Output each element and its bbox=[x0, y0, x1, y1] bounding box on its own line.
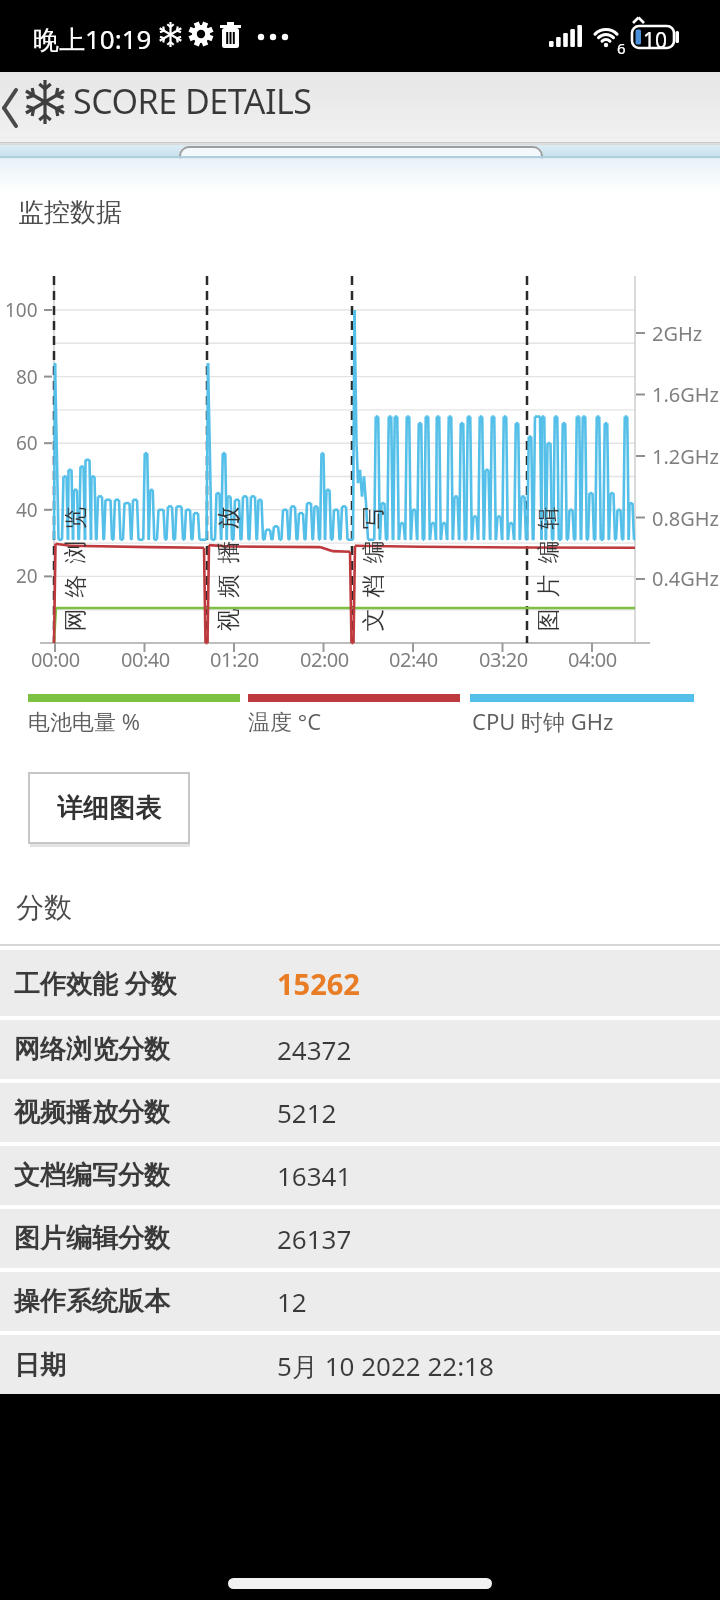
staticText: 16341 bbox=[277, 1158, 352, 1193]
staticText: 80 bbox=[16, 364, 38, 390]
staticText: 02:00 bbox=[300, 646, 349, 670]
staticText: 00:00 bbox=[31, 646, 80, 670]
staticText: 24372 bbox=[277, 1032, 352, 1067]
staticText: 网络浏览分数 bbox=[14, 1033, 170, 1066]
staticText: 04:00 bbox=[568, 646, 617, 670]
staticText: 00:40 bbox=[121, 646, 170, 670]
staticText: 5212 bbox=[277, 1095, 337, 1130]
button[interactable]: 工作效能 分数 bbox=[0, 950, 720, 1016]
staticText: 工作效能 分数 bbox=[14, 965, 177, 1001]
staticText: 分数 bbox=[16, 890, 72, 925]
staticText: 12 bbox=[277, 1284, 307, 1319]
staticText: 监控数据 bbox=[18, 196, 122, 229]
staticText: 60 bbox=[16, 430, 38, 456]
staticText: 0.8GHz bbox=[652, 505, 720, 532]
button[interactable]: 日期 bbox=[0, 1335, 720, 1396]
button[interactable]: 操作系统版本 bbox=[0, 1272, 720, 1331]
button[interactable] bbox=[0, 88, 20, 128]
staticText: 02:40 bbox=[389, 646, 438, 670]
staticText: 视频播放分数 bbox=[14, 1096, 170, 1129]
staticText: 26137 bbox=[277, 1221, 352, 1256]
staticText: 视频播放 bbox=[214, 501, 243, 637]
staticText: 0.4GHz bbox=[652, 565, 720, 592]
staticText: 操作系统版本 bbox=[14, 1285, 170, 1318]
staticText: 文档编写分数 bbox=[14, 1159, 170, 1192]
button[interactable]: 详细图表 bbox=[28, 772, 190, 844]
staticText: SCORE DETAILS bbox=[73, 78, 312, 124]
staticText: 100 bbox=[5, 297, 38, 323]
staticText: 日期 bbox=[14, 1349, 66, 1382]
staticText: CPU 时钟 GHz bbox=[472, 706, 614, 736]
staticText: 图片编辑分数 bbox=[14, 1222, 170, 1255]
staticText: 5月 10 2022 22:18 bbox=[277, 1348, 494, 1384]
staticText: 20 bbox=[16, 563, 38, 589]
button[interactable]: 网络浏览分数 bbox=[0, 1020, 720, 1079]
staticText: 03:20 bbox=[479, 646, 528, 670]
staticText: 文档编写 bbox=[359, 501, 388, 637]
staticText: 电池电量 % bbox=[28, 706, 141, 736]
staticText: 2GHz bbox=[652, 320, 703, 347]
staticText: 01:20 bbox=[210, 646, 259, 670]
staticText: 1.6GHz bbox=[652, 381, 720, 408]
staticText: 10 bbox=[643, 26, 668, 55]
button[interactable] bbox=[228, 1578, 492, 1589]
staticText: 40 bbox=[16, 497, 38, 523]
staticText: 温度 °C bbox=[248, 706, 322, 736]
staticText: 图片编辑 bbox=[534, 501, 563, 637]
staticText: 晚上10:19 bbox=[33, 21, 152, 57]
staticText: 详细图表 bbox=[57, 792, 161, 825]
button[interactable]: 文档编写分数 bbox=[0, 1146, 720, 1205]
button[interactable]: 图片编辑分数 bbox=[0, 1209, 720, 1268]
button[interactable]: 视频播放分数 bbox=[0, 1083, 720, 1142]
staticText: 1.2GHz bbox=[652, 443, 720, 470]
staticText: 15262 bbox=[277, 964, 360, 1003]
staticText: 6 bbox=[617, 38, 626, 58]
staticText: 网络浏览 bbox=[61, 501, 90, 637]
